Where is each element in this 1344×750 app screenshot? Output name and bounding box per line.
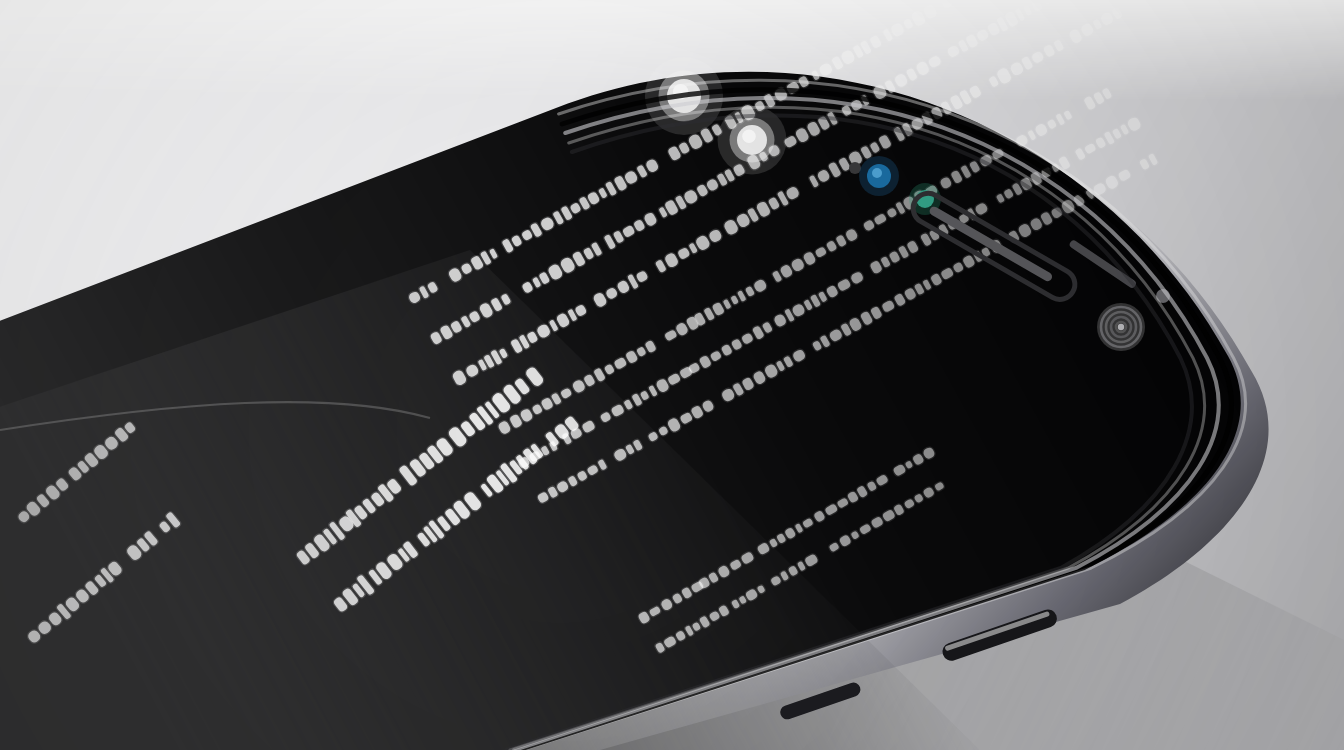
button[interactable]: Smartphone with dark screen of text — [0, 0, 1344, 750]
